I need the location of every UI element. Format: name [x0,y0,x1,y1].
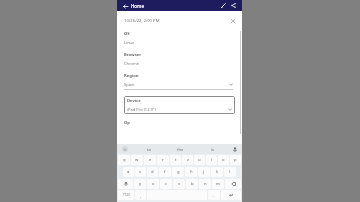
staticText: is [211,147,214,152]
button[interactable]: c [160,179,172,189]
button[interactable]: l [224,167,236,177]
staticText: u [198,157,201,163]
staticText: d [151,169,154,175]
button[interactable]: d [147,167,158,177]
button[interactable]: t [170,155,181,165]
staticText: o [222,157,225,163]
button[interactable]: Shift [118,179,133,189]
staticText: b [191,181,194,187]
staticText: i [211,157,213,163]
staticText: > [124,147,126,152]
staticText: Browser [124,52,142,58]
button[interactable]: j [198,167,210,177]
button[interactable]: Region [124,73,233,90]
button[interactable]: More suggestions [117,144,133,154]
button[interactable]: b [186,179,198,189]
button[interactable]: q [118,155,130,165]
staticText: Op [124,120,130,126]
staticText: t [175,157,177,163]
staticText: w [135,157,139,163]
staticText: x [152,181,155,187]
button[interactable]: m [212,179,224,189]
staticText: Device [127,98,141,104]
staticText: z [187,157,189,163]
button[interactable]: Symbols [118,190,134,200]
staticText: k [216,169,219,175]
button[interactable]: y [134,179,146,189]
button[interactable]: is [196,144,228,154]
staticText: g [177,169,180,175]
button[interactable]: OS [124,31,237,45]
staticText: Home [131,3,144,9]
button[interactable]: u [194,155,205,165]
button[interactable]: Device [124,96,235,114]
button[interactable]: o [218,155,229,165]
button[interactable]: Close [229,17,237,25]
button[interactable]: v [173,179,185,189]
button[interactable]: Backspace [225,179,241,189]
button[interactable]: Edit [219,1,228,10]
staticText: Chrome [124,61,139,66]
staticText: l [229,169,231,175]
staticText: h [190,169,193,175]
button[interactable]: a [123,167,134,177]
button[interactable]: x [147,179,159,189]
staticText: . [213,193,215,198]
staticText: Region [124,73,139,79]
button[interactable]: Back [121,2,129,10]
button[interactable]: e [144,155,156,165]
staticText: iPad Pro (12.9") [127,107,156,112]
staticText: ?123 [123,193,130,197]
button[interactable]: r [157,155,169,165]
staticText: n [204,181,207,187]
staticText: to [147,147,151,152]
staticText: f [164,169,166,175]
staticText: r [162,157,164,163]
button[interactable]: Voice input [228,144,242,154]
button[interactable]: p [230,155,241,165]
button[interactable]: w [131,155,143,165]
staticText: a [127,169,130,175]
button[interactable]: Enter [221,190,241,200]
staticText: s [139,169,142,175]
staticText: Spain [124,82,135,87]
button[interactable]: k [211,167,223,177]
button[interactable]: g [172,167,184,177]
button[interactable]: z [182,155,193,165]
staticText: q [123,157,126,163]
staticText: v [178,181,181,187]
button[interactable]: n [199,179,211,189]
button[interactable]: i [206,155,217,165]
staticText: p [234,157,237,163]
button[interactable]: Emoji [135,190,146,200]
staticText: m [216,181,220,187]
staticText: Linux [124,40,135,45]
button[interactable]: f [159,167,171,177]
staticText: y [139,181,142,187]
button[interactable]: s [135,167,146,177]
staticText: e [149,157,152,163]
staticText: c [165,181,168,187]
staticText: j [203,169,205,175]
button[interactable]: Browser [124,52,237,66]
staticText: 10/26/22, 2:00 PM [124,18,160,24]
staticText: OS [124,31,130,37]
button[interactable]: to [133,144,164,154]
button[interactable]: Share [229,1,238,10]
button[interactable]: h [185,167,197,177]
button[interactable]: the [164,144,196,154]
staticText: the [177,147,184,152]
staticText: , [140,193,142,198]
